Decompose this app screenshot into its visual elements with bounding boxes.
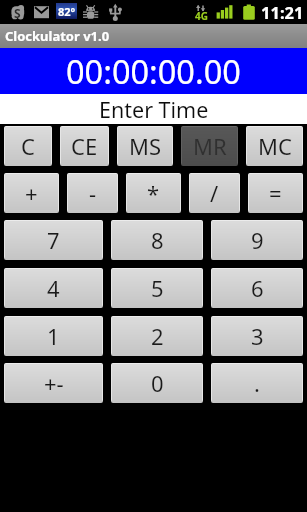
staticText: 5 [151, 273, 164, 303]
button[interactable]: 9 [211, 220, 303, 260]
button[interactable]: 0 [111, 363, 203, 403]
staticText: 2 [151, 321, 164, 351]
staticText: 82° [58, 4, 76, 19]
staticText: 11:21 [261, 1, 304, 23]
button[interactable]: 7 [4, 220, 103, 260]
button[interactable]: 8 [111, 220, 203, 260]
button[interactable]: 5 [111, 268, 203, 308]
button[interactable]: 3 [211, 316, 303, 356]
button[interactable]: + [4, 173, 59, 213]
staticText: 1 [47, 321, 60, 351]
staticText: 00:00:00.00 [66, 49, 241, 93]
button[interactable]: 1 [4, 316, 103, 356]
button[interactable]: C [4, 126, 52, 166]
staticText: C [21, 131, 35, 161]
button[interactable]: MS [117, 126, 173, 166]
staticText: 9 [251, 225, 264, 255]
staticText: + [25, 178, 38, 208]
button[interactable]: CE [60, 126, 109, 166]
staticText: 6 [251, 273, 264, 303]
button[interactable]: 4 [4, 268, 103, 308]
button[interactable]: / [189, 173, 240, 213]
staticText: S [14, 5, 21, 19]
staticText: / [210, 178, 219, 208]
button[interactable]: MC [246, 126, 303, 166]
button[interactable]: - [67, 173, 118, 213]
staticText: MR [193, 131, 227, 161]
button[interactable]: +- [4, 363, 103, 403]
staticText: MS [129, 131, 162, 161]
staticText: . [254, 368, 260, 398]
button[interactable]: * [126, 173, 181, 213]
staticText: CE [71, 131, 98, 161]
staticText: = [269, 178, 282, 208]
button[interactable]: 6 [211, 268, 303, 308]
staticText: +- [44, 368, 64, 398]
staticText: 4G [195, 9, 208, 23]
staticText: 3 [251, 321, 264, 351]
staticText: 4 [47, 273, 60, 303]
staticText: 8 [151, 225, 164, 255]
staticText: Clockulator v1.0 [5, 27, 110, 45]
staticText: 0 [151, 368, 164, 398]
staticText: MC [258, 131, 292, 161]
staticText: * [147, 178, 160, 208]
button[interactable]: MR [181, 126, 238, 166]
button[interactable]: 2 [111, 316, 203, 356]
staticText: 7 [47, 225, 60, 255]
button[interactable]: = [248, 173, 303, 213]
staticText: - [89, 178, 97, 208]
button[interactable]: . [211, 363, 303, 403]
staticText: Enter Time [99, 95, 209, 124]
